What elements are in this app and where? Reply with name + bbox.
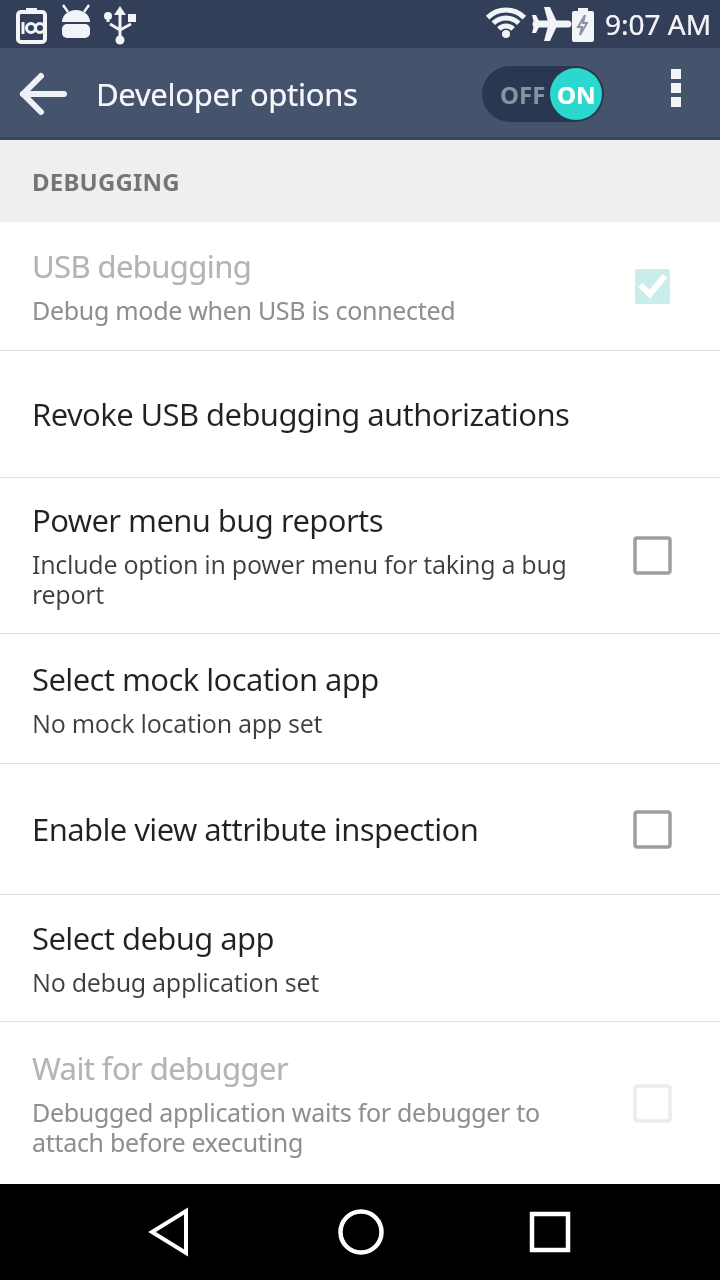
button[interactable] [128, 1190, 212, 1274]
staticText: OFF [500, 78, 546, 111]
button[interactable]: Select debug app [0, 895, 720, 1021]
button[interactable] [321, 1192, 401, 1272]
button[interactable]: USB debugging [0, 222, 720, 350]
staticText: ON [557, 78, 596, 111]
staticText: DEBUGGING [32, 165, 180, 198]
staticText: 9:07 AM [605, 5, 712, 43]
staticText: Include option in power menu for taking … [32, 547, 567, 612]
staticText: Revoke USB debugging authorizations [32, 393, 570, 435]
staticText: Developer options [96, 73, 358, 115]
button[interactable]: Enable view attribute inspection [0, 764, 720, 894]
staticText: USB debugging [32, 245, 252, 287]
button[interactable] [510, 1192, 590, 1272]
staticText: Select debug app [32, 917, 274, 959]
button[interactable]: Select mock location app [0, 634, 720, 763]
button[interactable]: Revoke USB debugging authorizations [0, 351, 720, 477]
button[interactable]: Power menu bug reports [0, 478, 720, 633]
staticText: Power menu bug reports [32, 499, 383, 541]
staticText: Debug mode when USB is connected [32, 293, 456, 327]
staticText: No mock location app set [32, 706, 323, 740]
button[interactable]: Wait for debugger [0, 1022, 720, 1184]
button[interactable]: OFF [482, 66, 604, 122]
button[interactable] [18, 68, 70, 120]
staticText: Enable view attribute inspection [32, 808, 479, 850]
staticText: Debugged application waits for debugger … [32, 1095, 540, 1160]
staticText: Select mock location app [32, 658, 379, 700]
staticText: Wait for debugger [32, 1047, 289, 1089]
staticText: No debug application set [32, 965, 319, 999]
button[interactable] [662, 68, 690, 120]
